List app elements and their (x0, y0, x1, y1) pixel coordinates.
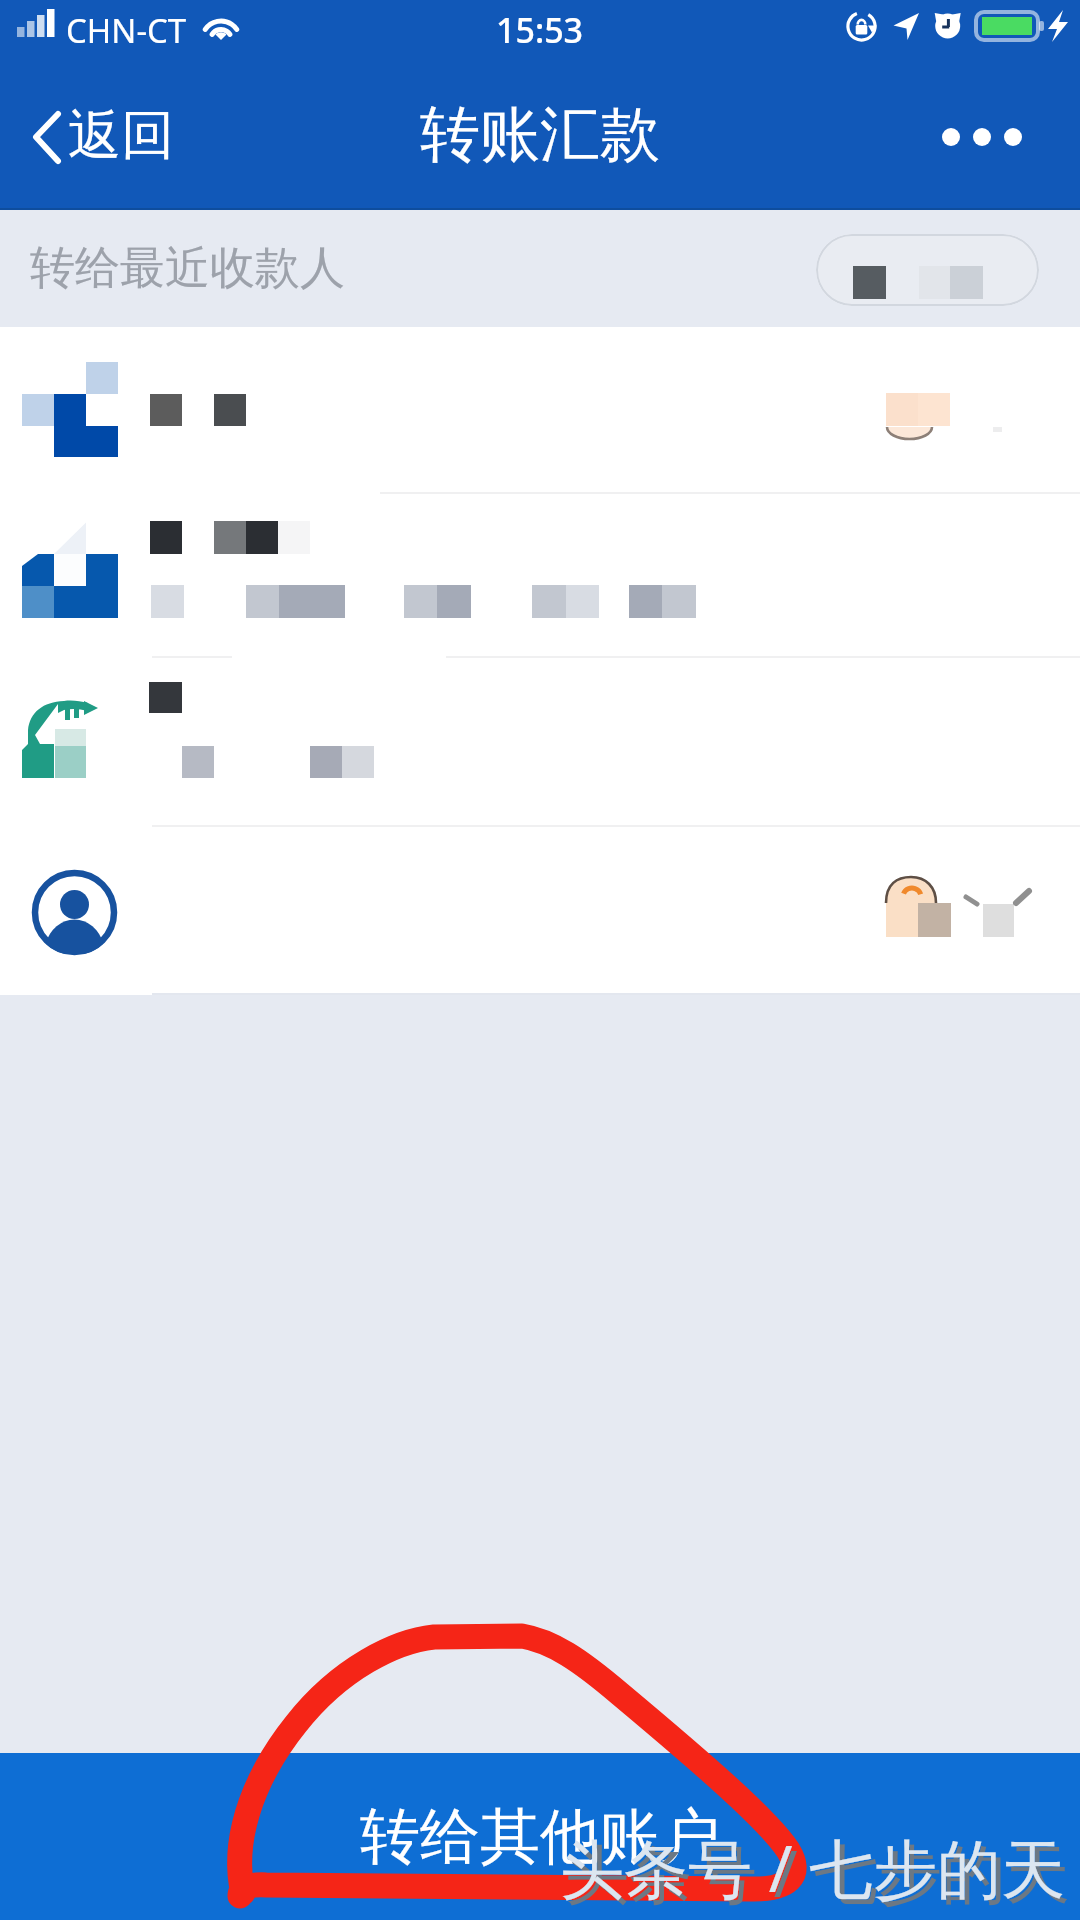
button[interactable] (0, 827, 1080, 995)
staticText: 转账汇款 (420, 97, 660, 173)
button[interactable] (0, 327, 1080, 493)
button[interactable]: 返回 (0, 60, 200, 210)
button[interactable] (816, 234, 1039, 306)
button[interactable]: 转给其他账户 (0, 1753, 1080, 1920)
button[interactable]: More options (920, 60, 1080, 210)
button[interactable] (0, 493, 1080, 658)
staticText: 转给最近收款人 (30, 240, 345, 297)
staticText: 头条号 / 七步的天 (560, 1824, 1066, 1911)
staticText: 转给其他账户 (360, 1799, 720, 1875)
staticText: 返回 (68, 102, 174, 169)
staticText: 头条号 / 七步的天 (565, 1829, 1071, 1916)
staticText: CHN-CT (66, 8, 187, 53)
staticText: 15:53 (496, 7, 584, 53)
button[interactable] (0, 658, 1080, 827)
